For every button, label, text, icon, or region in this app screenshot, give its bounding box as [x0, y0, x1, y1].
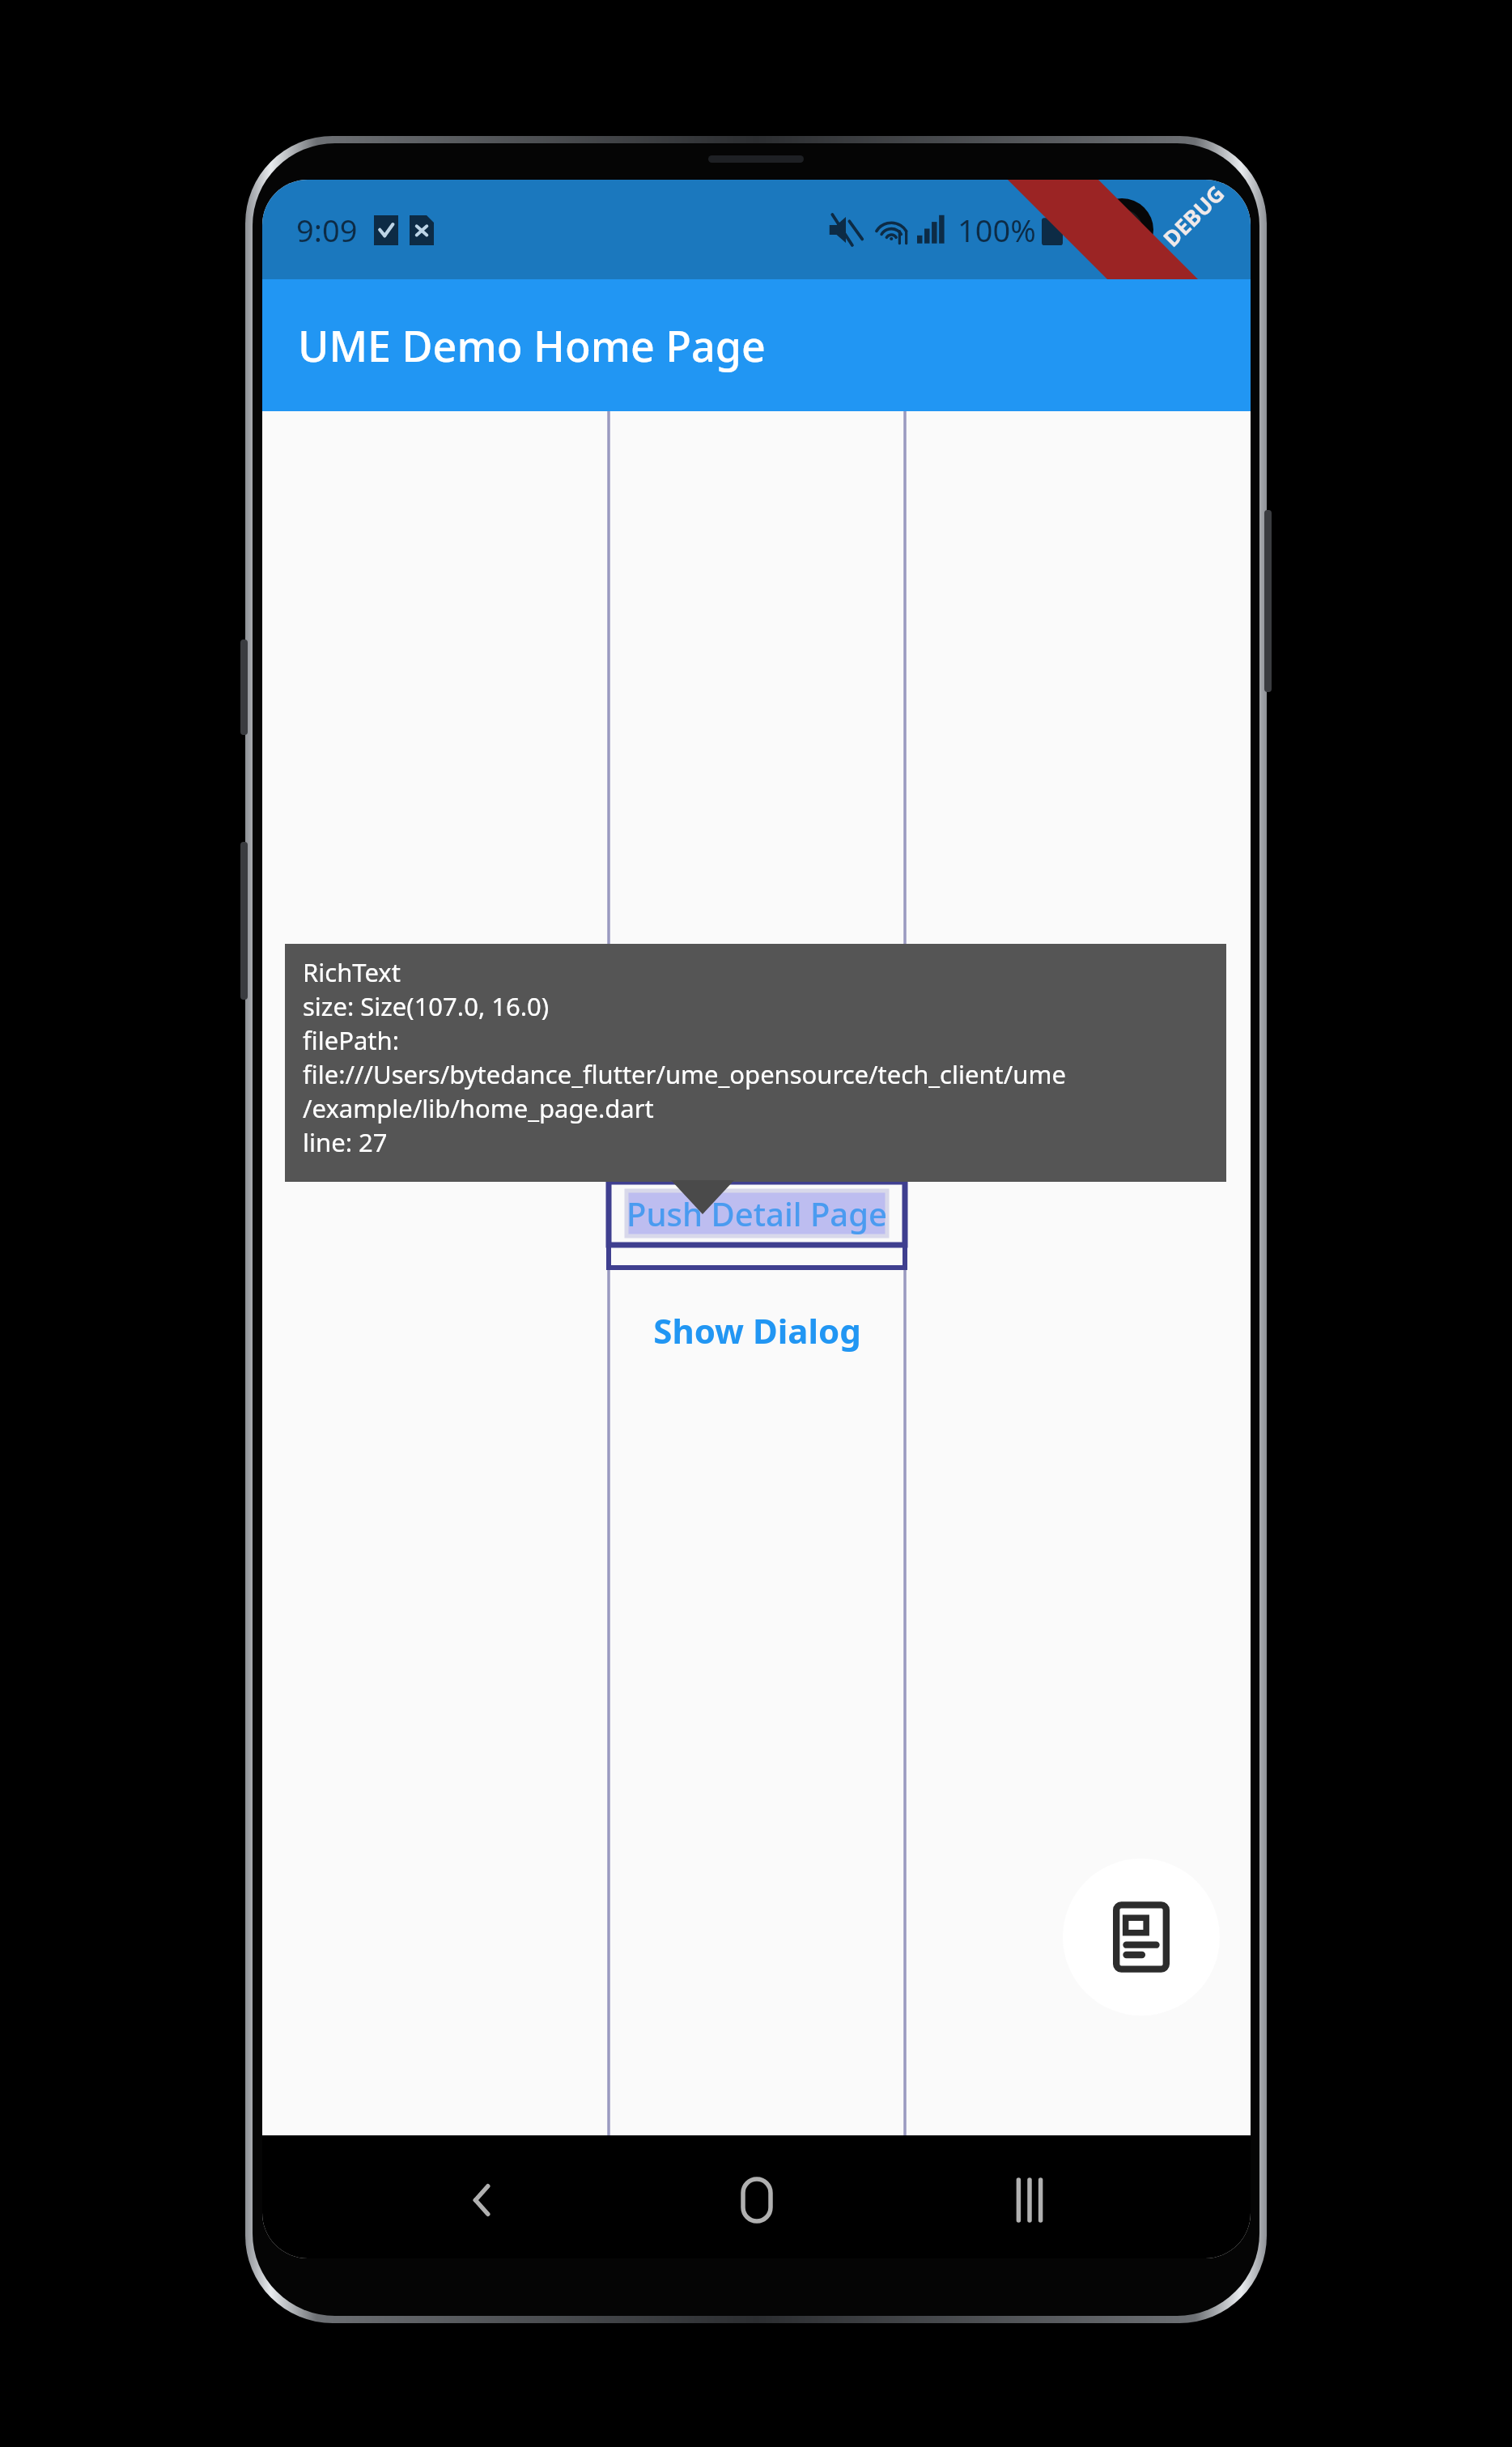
button[interactable]: Recent apps [977, 2147, 1082, 2253]
button[interactable]: Show Dialog [609, 1295, 905, 1365]
button[interactable]: Back [431, 2147, 536, 2253]
staticText: line: 27 [303, 1125, 388, 1159]
staticText: 100% [958, 209, 1036, 251]
staticText: file:///Users/bytedance_flutter/ume_open… [303, 1057, 1066, 1091]
staticText: Push Detail Page [626, 1192, 887, 1235]
staticText: filePath: [303, 1023, 399, 1057]
staticText: Show Dialog [653, 1307, 861, 1353]
button[interactable]: Push Detail Page [609, 1182, 905, 1245]
staticText: 9:09 [296, 209, 358, 251]
staticText: RichText [303, 955, 401, 989]
staticText: size: Size(107.0, 16.0) [303, 989, 550, 1023]
button[interactable]: Open UME inspector [1063, 1859, 1220, 2016]
staticText: UME Demo Home Page [298, 316, 766, 374]
button[interactable]: Home [704, 2147, 809, 2253]
staticText: DEBUG [1156, 180, 1231, 253]
staticText: /example/lib/home_page.dart [303, 1091, 654, 1125]
